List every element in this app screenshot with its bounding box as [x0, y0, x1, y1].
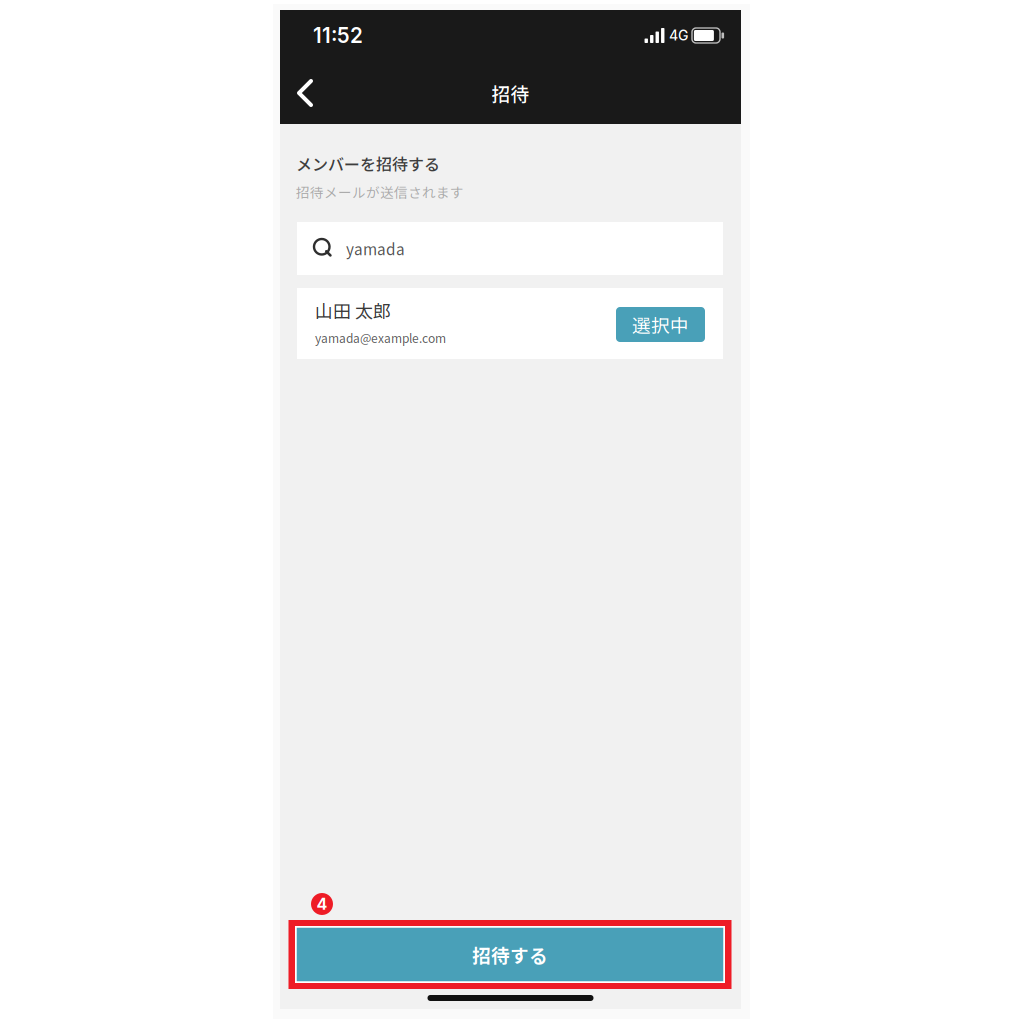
staticText: yamada	[346, 237, 405, 260]
staticText: メンバーを招待する	[296, 152, 440, 175]
staticText: 招待する	[472, 941, 548, 968]
staticText: 選択中	[632, 311, 689, 338]
staticText: 4G	[669, 27, 688, 44]
button[interactable]: 招待する	[288, 920, 731, 989]
button[interactable]: Back	[283, 71, 325, 115]
staticText: 4	[316, 894, 327, 914]
staticText: 11:52	[313, 23, 363, 48]
staticText: 山田 太郎	[315, 297, 391, 323]
button[interactable]: 山田 太郎	[297, 288, 723, 359]
staticText: 招待	[491, 79, 529, 106]
staticText: 招待メールが送信されます	[296, 182, 464, 202]
button[interactable]: yamada	[297, 222, 723, 275]
staticText: yamada@example.com	[315, 329, 446, 346]
